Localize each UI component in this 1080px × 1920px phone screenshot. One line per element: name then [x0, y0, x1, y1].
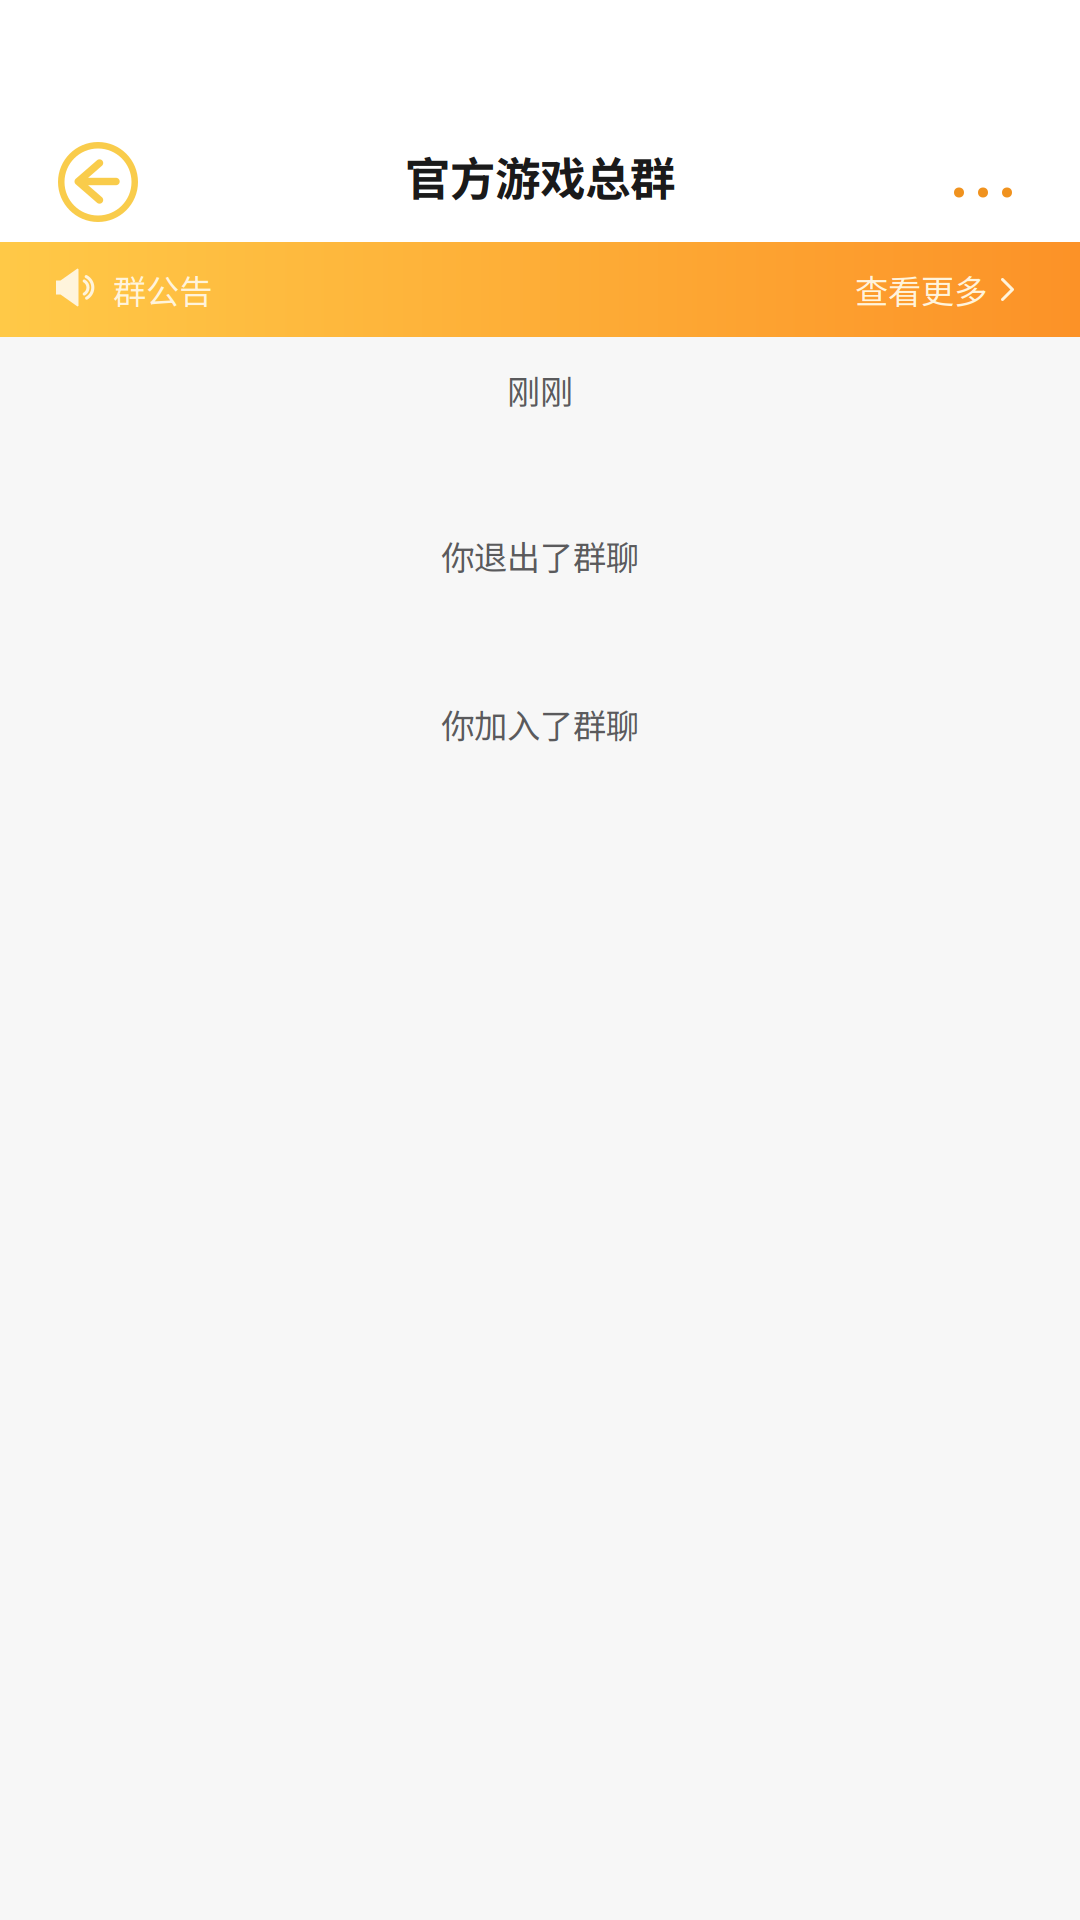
staticText: 你退出了群聊 — [441, 531, 639, 580]
button[interactable]: 更多 — [914, 122, 1080, 242]
button[interactable]: 返回 — [0, 122, 162, 242]
staticText: 查看更多 — [855, 265, 987, 314]
staticText: 官方游戏总群 — [405, 143, 675, 209]
staticText: 刚刚 — [507, 366, 573, 414]
staticText: 你加入了群聊 — [441, 699, 639, 748]
staticText: 群公告 — [113, 265, 212, 314]
button[interactable]: 群公告 — [0, 242, 1080, 337]
